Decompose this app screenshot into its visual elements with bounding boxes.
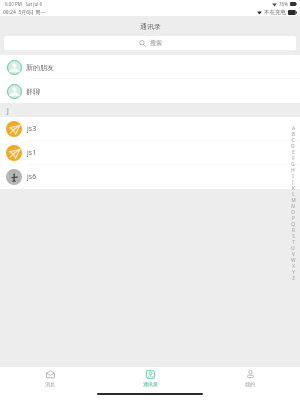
staticText: Q <box>291 221 295 227</box>
button[interactable]: js1 <box>0 141 300 165</box>
staticText: R <box>292 227 295 233</box>
staticText: js3 <box>27 124 37 134</box>
staticText: 09:24 5月6日 周一 <box>3 9 46 16</box>
staticText: D <box>291 143 295 149</box>
staticText: 新的朋友 <box>26 63 54 72</box>
staticText: V <box>292 251 295 257</box>
button[interactable]: 搜索 <box>4 36 296 50</box>
staticText: J <box>7 106 9 115</box>
button[interactable]: 新的朋友 <box>0 55 300 79</box>
staticText: js1 <box>27 148 37 158</box>
button[interactable]: 群聊 <box>0 79 300 103</box>
button[interactable]: 我的 <box>200 367 300 390</box>
staticText: E <box>292 149 295 155</box>
staticText: Y <box>292 269 295 275</box>
staticText: M <box>291 197 296 203</box>
staticText: S <box>292 233 295 239</box>
button[interactable]: js6 <box>0 165 300 189</box>
button[interactable]: 消息 <box>0 367 100 390</box>
staticText: F <box>292 155 295 161</box>
button[interactable]: js3 <box>0 117 300 141</box>
staticText: P <box>292 215 295 221</box>
button[interactable]: 通讯录 <box>100 367 200 390</box>
staticText: O <box>291 209 295 215</box>
staticText: 搜索 <box>150 39 162 47</box>
staticText: 通讯录 <box>140 22 161 31</box>
staticText: G <box>291 161 295 167</box>
staticText: 我的 <box>245 381 255 387</box>
staticText: U <box>291 245 295 251</box>
staticText: W <box>291 257 296 263</box>
staticText: 76% <box>279 1 288 7</box>
staticText: N <box>291 203 295 209</box>
staticText: T <box>292 239 295 245</box>
staticText: 6:00 PM Sat Jul 6 <box>5 1 43 7</box>
staticText: X <box>292 263 295 269</box>
staticText: H <box>291 167 295 173</box>
staticText: 通讯录 <box>143 381 158 387</box>
staticText: I <box>292 173 294 179</box>
staticText: 消息 <box>45 381 55 387</box>
staticText: B <box>292 131 295 137</box>
staticText: Z <box>292 275 295 281</box>
staticText: A <box>292 125 295 131</box>
staticText: K <box>292 185 295 191</box>
staticText: 群聊 <box>26 87 40 96</box>
staticText: J <box>292 179 294 185</box>
staticText: js6 <box>27 172 37 182</box>
staticText: L <box>292 191 295 197</box>
staticText: C <box>292 137 295 143</box>
staticText: 不在充电 <box>264 9 286 16</box>
